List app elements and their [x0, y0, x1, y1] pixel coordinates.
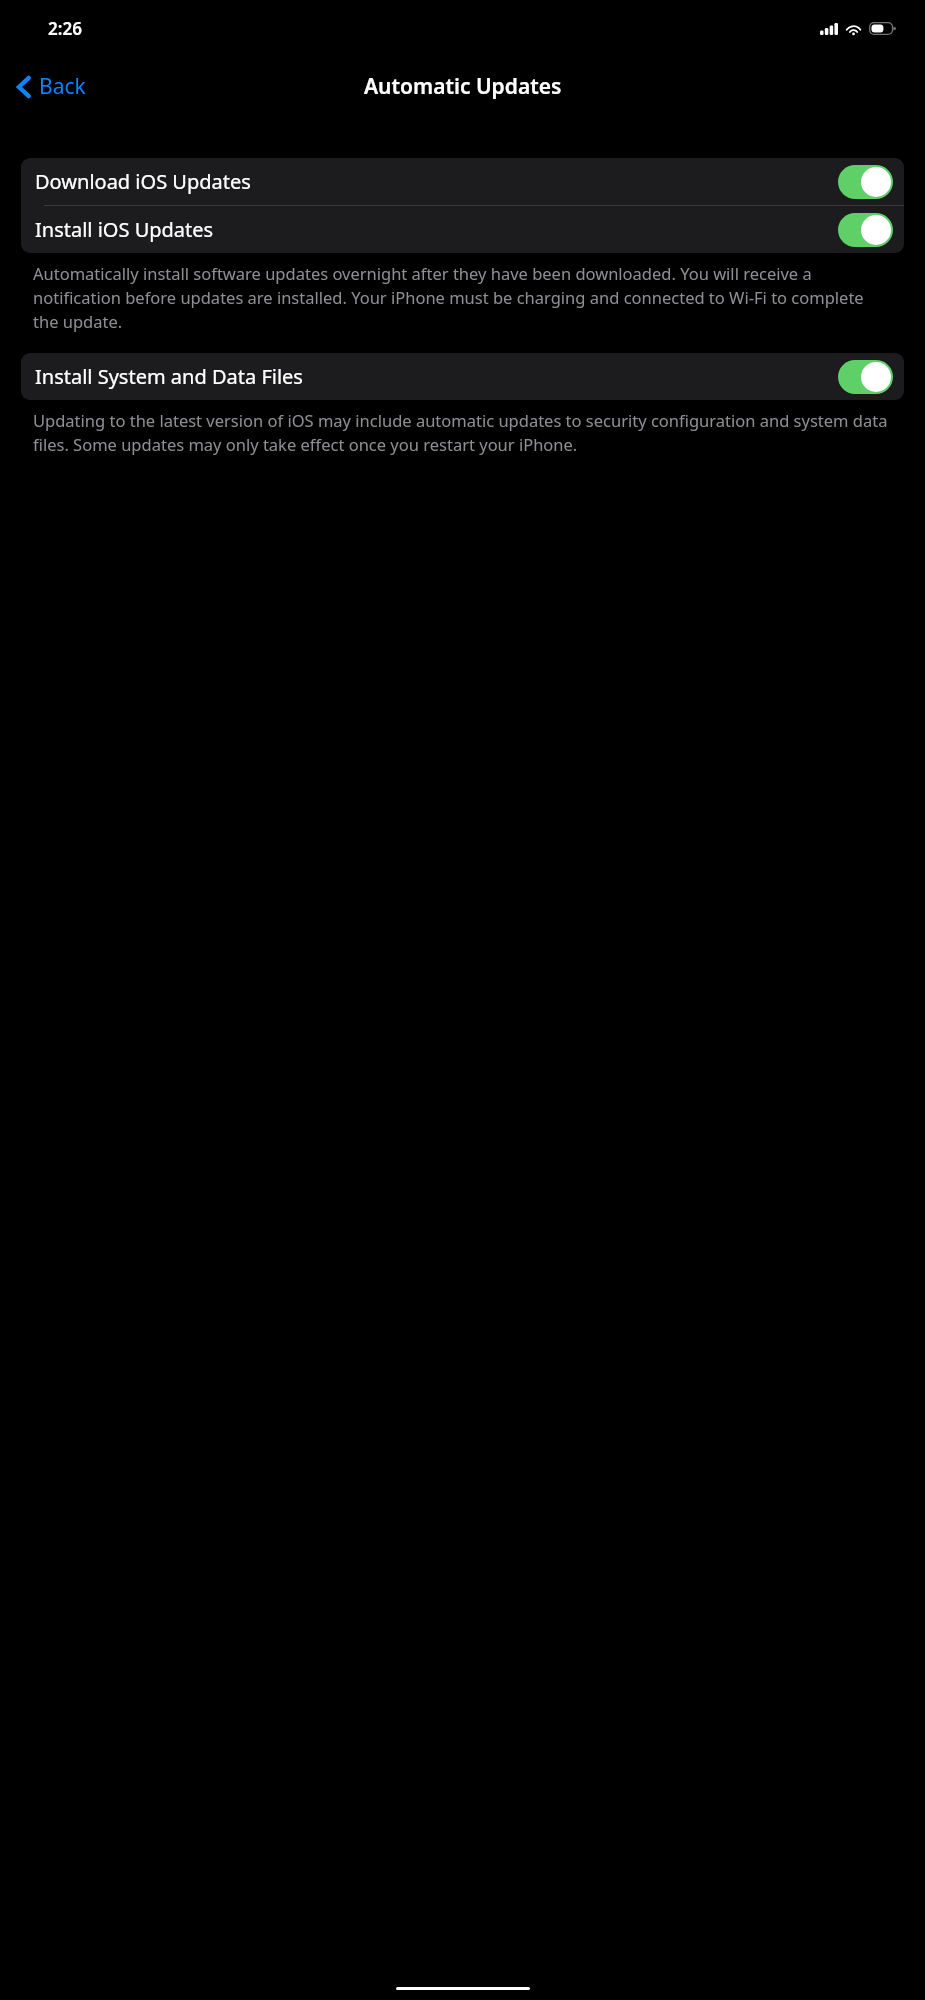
- staticText: Automatic Updates: [364, 72, 562, 101]
- staticText: 2:26: [48, 17, 82, 40]
- staticText: Back: [39, 72, 86, 101]
- button[interactable]: Download iOS Updates: [21, 158, 904, 205]
- staticText: Install System and Data Files: [35, 363, 838, 390]
- button[interactable]: Back: [0, 64, 98, 109]
- button[interactable]: Install System and Data Files: [21, 353, 904, 400]
- staticText: Automatically install software updates o…: [33, 262, 892, 333]
- button[interactable]: Toggle switch, on: [838, 213, 893, 247]
- button[interactable]: Install iOS Updates: [21, 206, 904, 253]
- button[interactable]: Toggle switch, on: [838, 360, 893, 394]
- button[interactable]: Toggle switch, on: [838, 165, 893, 199]
- staticText: Download iOS Updates: [35, 168, 838, 195]
- staticText: Install iOS Updates: [35, 216, 838, 243]
- staticText: Updating to the latest version of iOS ma…: [33, 409, 892, 456]
